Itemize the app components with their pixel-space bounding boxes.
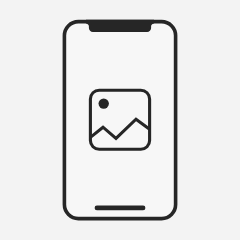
button[interactable]: Smartphone photo gallery icon bbox=[0, 0, 240, 240]
